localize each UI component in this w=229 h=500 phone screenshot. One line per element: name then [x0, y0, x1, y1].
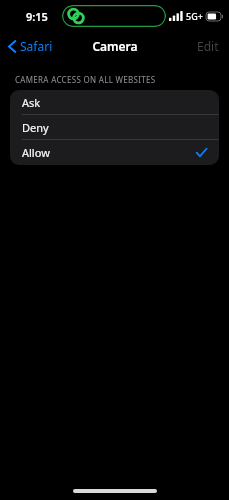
staticText: 5G+: [186, 10, 203, 22]
staticText: Deny: [22, 120, 49, 135]
staticText: Ask: [22, 95, 41, 110]
staticText: Edit: [197, 38, 219, 54]
button[interactable]: Deny: [10, 115, 219, 140]
other: Selected: [196, 148, 207, 157]
button[interactable]: Edit: [187, 34, 229, 58]
button[interactable]: Allow: [10, 140, 219, 165]
staticText: CAMERA ACCESS ON ALL WEBSITES: [15, 74, 156, 85]
staticText: 9:15: [26, 9, 48, 24]
staticText: Camera: [92, 38, 138, 54]
button[interactable]: Safari: [0, 35, 61, 57]
staticText: Allow: [22, 145, 50, 160]
button[interactable]: Ask: [10, 90, 219, 115]
staticText: Safari: [20, 38, 53, 54]
